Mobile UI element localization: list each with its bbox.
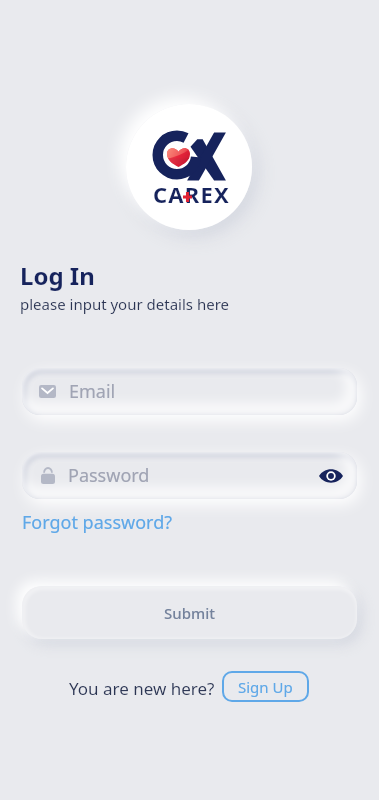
button[interactable]: Forgot password? [22, 510, 173, 535]
button[interactable]: Email [22, 368, 357, 415]
staticText: Submit [164, 603, 215, 623]
button[interactable]: Submit [22, 586, 357, 639]
staticText: You are new here? [69, 677, 215, 700]
button[interactable]: Password [22, 452, 357, 499]
staticText: please input your details here [20, 294, 229, 314]
staticText: Forgot password? [22, 510, 173, 535]
staticText: Sign Up [238, 677, 293, 697]
staticText: Password [68, 463, 150, 488]
button[interactable]: Show password [309, 454, 353, 498]
staticText: Email [69, 379, 116, 404]
staticText: CAREX [153, 179, 230, 209]
staticText: Log In [20, 259, 95, 292]
button[interactable]: Sign Up [222, 671, 309, 702]
